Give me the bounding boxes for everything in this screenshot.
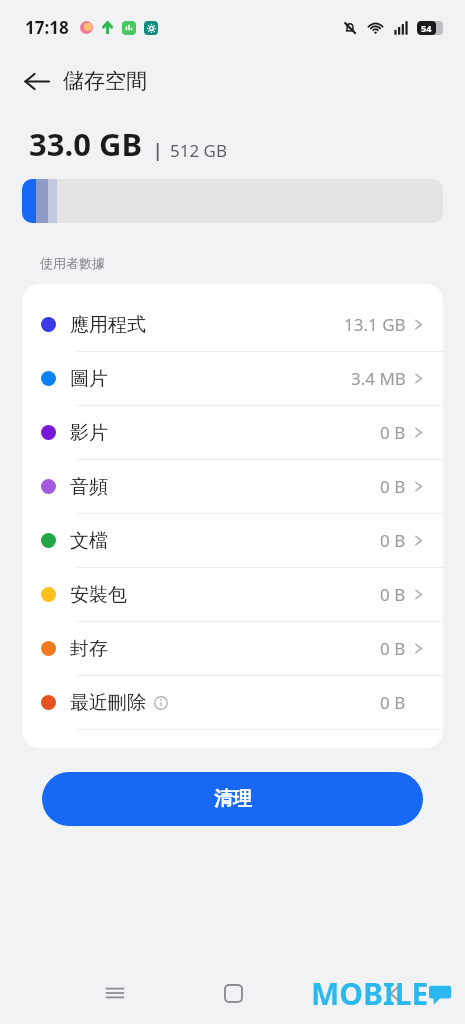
staticText: 13.1 GB xyxy=(344,313,406,336)
staticText: | xyxy=(153,139,163,162)
staticText: 0 B xyxy=(380,529,406,552)
button[interactable]: Recent apps xyxy=(92,970,138,1016)
staticText: 音頻 xyxy=(70,475,108,499)
staticText: 3.4 MB xyxy=(351,367,406,390)
staticText: 0 B xyxy=(380,583,406,606)
staticText: 0 B xyxy=(380,475,406,498)
button[interactable]: 影片 xyxy=(22,406,443,459)
staticText: 17:18 xyxy=(25,16,69,39)
button[interactable]: 應用程式 xyxy=(22,298,443,351)
staticText: 使用者數據 xyxy=(40,255,105,271)
staticText: 0 B xyxy=(380,421,406,444)
button[interactable]: 圖片 xyxy=(22,352,443,405)
staticText: 0 B xyxy=(380,637,406,660)
staticText: 512 GB xyxy=(170,139,228,162)
staticText: 54 xyxy=(421,22,432,34)
button[interactable]: 清理 xyxy=(42,772,423,826)
staticText: 最近刪除 xyxy=(70,691,146,715)
button[interactable]: Back xyxy=(13,58,59,104)
staticText: 儲存空間 xyxy=(63,68,147,94)
button[interactable]: 音頻 xyxy=(22,460,443,513)
staticText: 圖片 xyxy=(70,367,108,391)
button[interactable]: Back xyxy=(371,970,417,1016)
staticText: 33.0 GB xyxy=(29,123,143,165)
staticText: 0 B xyxy=(380,691,406,714)
staticText: 影片 xyxy=(70,421,108,445)
button[interactable]: 文檔 xyxy=(22,514,443,567)
staticText: 應用程式 xyxy=(70,313,146,337)
staticText: 安裝包 xyxy=(70,583,127,607)
button[interactable]: Home xyxy=(210,970,256,1016)
staticText: MOBILE xyxy=(311,973,429,1014)
staticText: 清理 xyxy=(214,787,252,811)
button[interactable]: 封存 xyxy=(22,622,443,675)
staticText: 封存 xyxy=(70,637,108,661)
staticText: 文檔 xyxy=(70,529,108,553)
button[interactable]: 安裝包 xyxy=(22,568,443,621)
button[interactable]: 最近刪除 xyxy=(22,676,443,729)
